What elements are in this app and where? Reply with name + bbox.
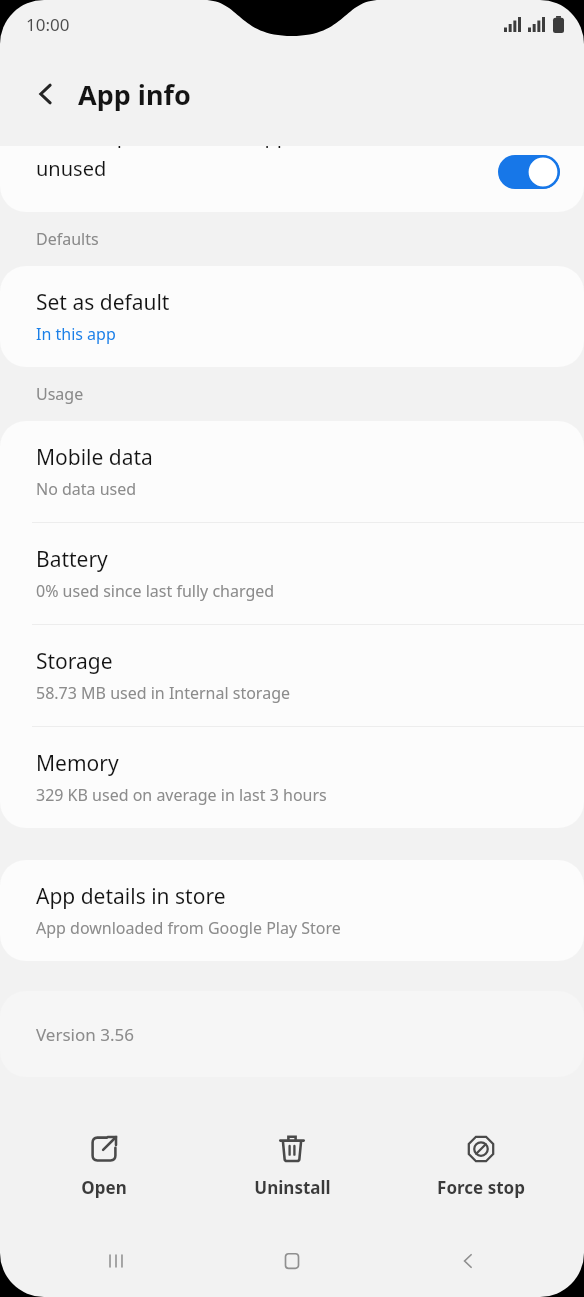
button[interactable]: Open xyxy=(19,1128,189,1205)
staticText: Version 3.56 xyxy=(36,1023,134,1046)
staticText: Uninstall xyxy=(254,1176,331,1199)
button[interactable]: Uninstall xyxy=(207,1128,377,1205)
button[interactable]: App details in store xyxy=(0,860,584,961)
staticText: No data used xyxy=(36,478,137,500)
button[interactable]: Force stop xyxy=(396,1128,566,1205)
staticText: Set as default xyxy=(36,288,170,317)
staticText: Open xyxy=(81,1176,127,1199)
staticText: Usage xyxy=(36,383,84,405)
staticText: Storage xyxy=(36,647,113,676)
button[interactable]: Back xyxy=(408,1231,528,1291)
staticText: Defaults xyxy=(36,228,99,250)
staticText: Mobile data xyxy=(36,443,153,472)
button[interactable]: Memory xyxy=(0,727,584,828)
button[interactable]: Back xyxy=(22,70,70,118)
staticText: 10:00 xyxy=(26,13,70,36)
staticText: App downloaded from Google Play Store xyxy=(36,917,341,939)
button[interactable]: Set as default xyxy=(0,266,584,367)
button[interactable]: Mobile data xyxy=(0,421,584,522)
staticText: Battery xyxy=(36,545,108,574)
button[interactable]: Remove permissions if app is unused togg… xyxy=(494,151,564,193)
staticText: Force stop xyxy=(437,1176,525,1199)
staticText: 58.73 MB used in Internal storage xyxy=(36,682,291,704)
button[interactable]: Home xyxy=(232,1231,352,1291)
button[interactable]: Recent apps xyxy=(56,1231,176,1291)
staticText: Remove permissions if app is xyxy=(36,146,310,149)
button[interactable]: Battery xyxy=(0,523,584,624)
staticText: In this app xyxy=(36,323,116,345)
staticText: unused xyxy=(36,155,107,182)
staticText: 329 KB used on average in last 3 hours xyxy=(36,784,327,806)
staticText: App details in store xyxy=(36,882,226,911)
staticText: Memory xyxy=(36,749,119,778)
button[interactable]: Storage xyxy=(0,625,584,726)
staticText: App info xyxy=(78,76,191,113)
button[interactable]: Remove permissions if app is xyxy=(0,146,584,212)
staticText: 0% used since last fully charged xyxy=(36,580,275,602)
